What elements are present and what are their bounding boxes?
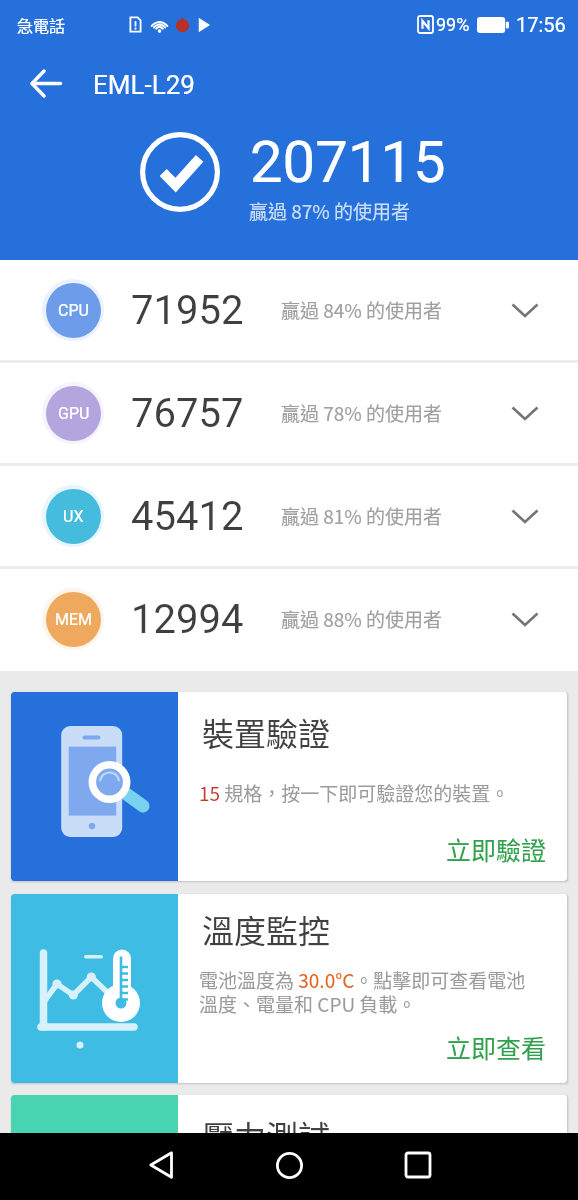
staticText: 贏過 81% 的使用者 bbox=[281, 502, 443, 530]
staticText: CPU bbox=[58, 301, 89, 320]
staticText: 贏過 84% 的使用者 bbox=[281, 296, 443, 324]
staticText: 71952 bbox=[131, 287, 244, 334]
button[interactable]: Recent apps bbox=[386, 1133, 450, 1197]
staticText: 99% bbox=[436, 14, 470, 35]
button[interactable]: 立即查看 bbox=[446, 1029, 547, 1065]
staticText: EML-L29 bbox=[93, 70, 195, 100]
button[interactable]: Home bbox=[257, 1133, 321, 1197]
button[interactable]: Expand bbox=[497, 488, 553, 544]
staticText: 溫度監控 bbox=[202, 906, 331, 952]
button[interactable]: 溫度監控 bbox=[11, 894, 567, 1083]
staticText: 15 規格，按一下即可驗證您的裝置。 bbox=[199, 779, 510, 807]
staticText: 裝置驗證 bbox=[202, 709, 331, 755]
staticText: 電池溫度為 30.0°C。點擊即可查看電池溫度、電量和 CPU 負載。 bbox=[199, 966, 534, 1018]
button[interactable]: UX bbox=[0, 466, 578, 566]
button[interactable]: 立即驗證 bbox=[446, 831, 547, 867]
staticText: MEM bbox=[55, 610, 93, 629]
button[interactable]: 裝置驗證 bbox=[11, 692, 567, 881]
button[interactable]: 壓力測試 bbox=[11, 1095, 567, 1155]
staticText: 贏過 78% 的使用者 bbox=[281, 399, 443, 427]
staticText: 壓力測試 bbox=[202, 1112, 331, 1155]
staticText: GPU bbox=[58, 404, 90, 423]
button[interactable]: CPU bbox=[0, 260, 578, 360]
staticText: 贏過 88% 的使用者 bbox=[281, 605, 443, 633]
button[interactable]: GPU bbox=[0, 363, 578, 463]
staticText: 17:56 bbox=[516, 13, 566, 36]
button[interactable]: MEM bbox=[0, 569, 578, 669]
button[interactable]: Expand bbox=[497, 385, 553, 441]
staticText: 贏過 87% 的使用者 bbox=[249, 197, 411, 225]
button[interactable]: Expand bbox=[497, 591, 553, 647]
button[interactable]: Back bbox=[15, 52, 77, 114]
staticText: UX bbox=[63, 507, 84, 526]
staticText: 12994 bbox=[131, 596, 244, 643]
button[interactable]: Expand bbox=[497, 282, 553, 338]
button[interactable]: Back bbox=[129, 1133, 193, 1197]
staticText: 207115 bbox=[250, 128, 446, 196]
staticText: 45412 bbox=[131, 493, 244, 540]
staticText: 急電話 bbox=[17, 13, 66, 36]
staticText: 76757 bbox=[131, 390, 244, 437]
